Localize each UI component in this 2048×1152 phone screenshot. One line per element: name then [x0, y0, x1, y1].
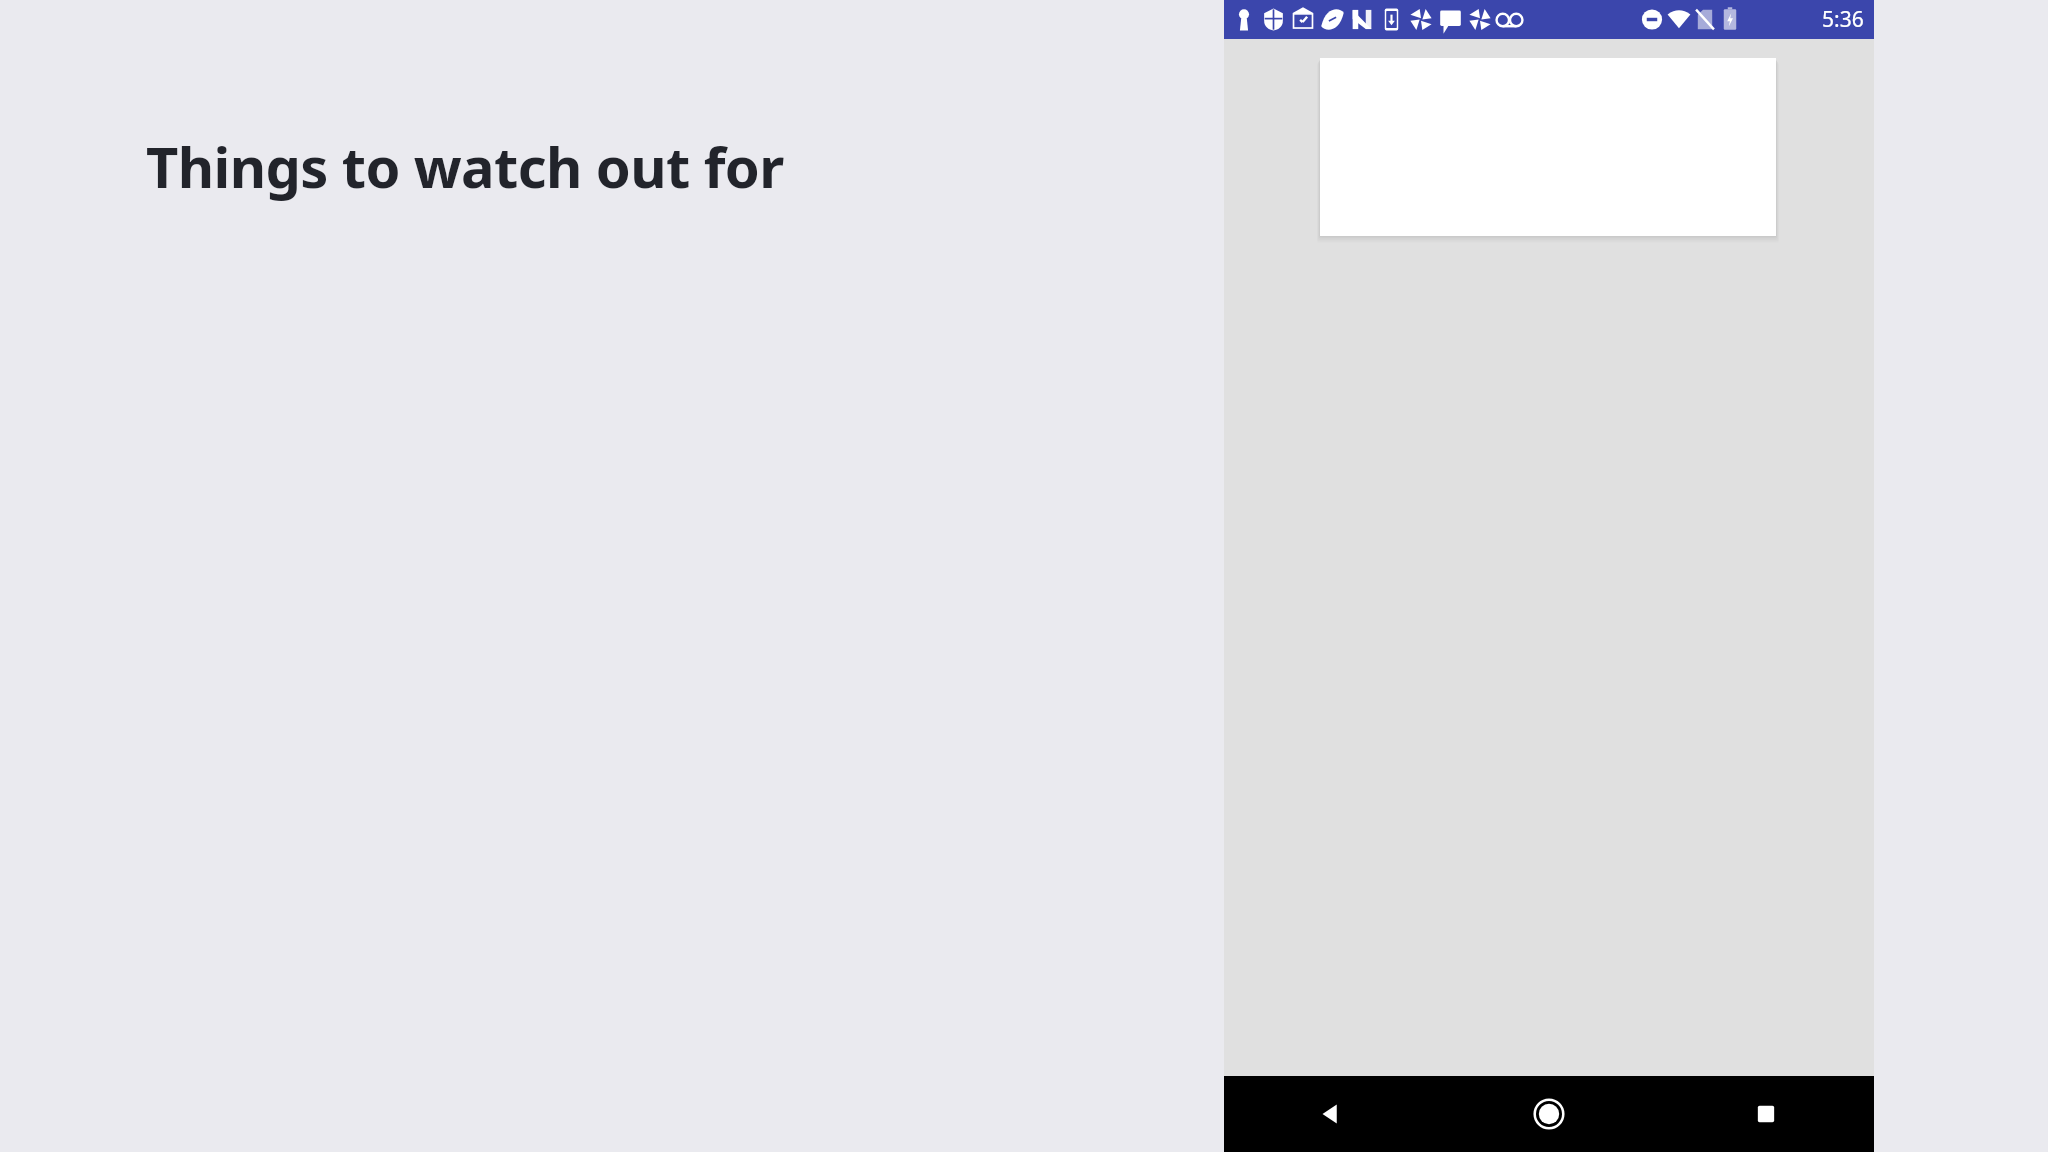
button[interactable]: Back: [1224, 1076, 1440, 1152]
staticText: Things to watch out for: [146, 128, 784, 204]
staticText: 5:36: [1822, 5, 1864, 34]
button[interactable]: Recent apps: [1657, 1076, 1874, 1152]
button[interactable]: Home: [1440, 1076, 1657, 1152]
